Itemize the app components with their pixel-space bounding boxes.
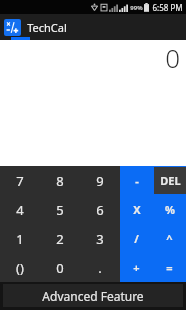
staticText: 0: [165, 40, 180, 75]
button[interactable]: (): [0, 253, 40, 282]
staticText: 5: [56, 201, 64, 219]
button[interactable]: Advanced Feature: [0, 282, 186, 310]
staticText: 7: [16, 172, 24, 190]
staticText: 6: [96, 201, 104, 219]
staticText: 9: [96, 172, 104, 190]
button[interactable]: =: [153, 253, 186, 282]
staticText: 2: [56, 230, 64, 248]
staticText: 0: [56, 259, 64, 277]
staticText: X: [133, 202, 141, 217]
button[interactable]: X: [120, 195, 153, 224]
button[interactable]: .: [80, 253, 120, 282]
staticText: TechCal: [27, 20, 67, 35]
button[interactable]: 2: [40, 224, 80, 253]
staticText: .: [98, 259, 102, 277]
button[interactable]: 8: [40, 166, 80, 195]
button[interactable]: 0: [0, 40, 186, 166]
button[interactable]: 1: [0, 224, 40, 253]
button[interactable]: 0: [40, 253, 80, 282]
staticText: 3: [96, 230, 104, 248]
staticText: (): [16, 259, 24, 277]
staticText: +: [133, 260, 140, 275]
other: TechCal app icon: [4, 19, 21, 36]
staticText: =: [166, 260, 173, 275]
button[interactable]: %: [153, 195, 186, 224]
staticText: Advanced Feature: [42, 288, 144, 304]
staticText: 99%: [130, 4, 143, 12]
button[interactable]: 7: [0, 166, 40, 195]
button[interactable]: ^: [153, 224, 186, 253]
staticText: 1: [16, 230, 24, 248]
button[interactable]: -: [120, 166, 153, 195]
staticText: 8: [56, 172, 64, 190]
button[interactable]: 6: [80, 195, 120, 224]
button[interactable]: DEL: [153, 166, 186, 195]
button[interactable]: 5: [40, 195, 80, 224]
button[interactable]: /: [120, 224, 153, 253]
button[interactable]: +: [120, 253, 153, 282]
staticText: 6:58 PM: [152, 2, 183, 13]
staticText: ^: [166, 231, 173, 246]
staticText: 4: [16, 201, 24, 219]
button[interactable]: 9: [80, 166, 120, 195]
staticText: /: [134, 231, 139, 246]
button[interactable]: 4: [0, 195, 40, 224]
staticText: %: [165, 202, 175, 217]
button[interactable]: TechCal app icon: [4, 19, 67, 36]
button[interactable]: 3: [80, 224, 120, 253]
staticText: DEL: [160, 173, 181, 188]
staticText: -: [135, 173, 139, 188]
